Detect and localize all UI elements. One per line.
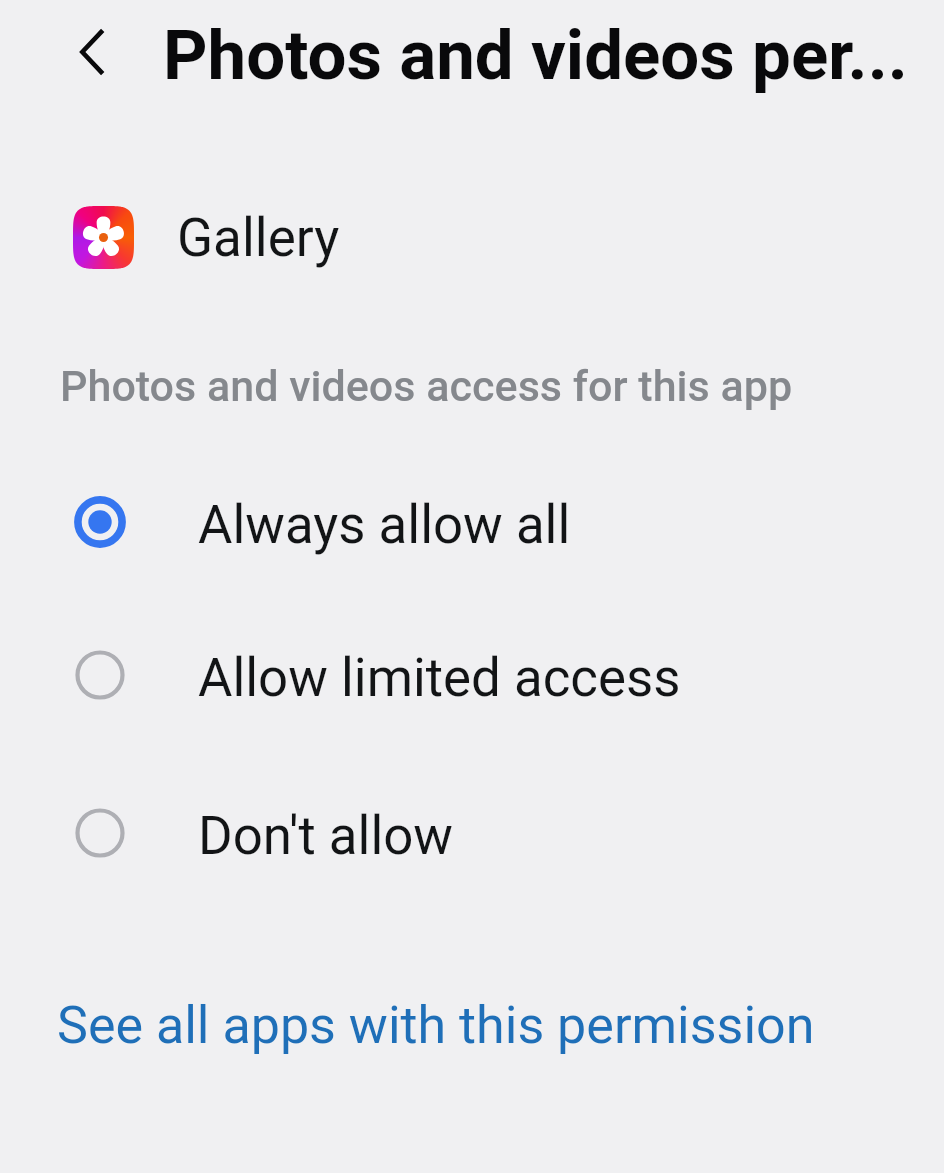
staticText: Allow limited access — [198, 647, 681, 709]
staticText: Don't allow — [198, 805, 454, 867]
button[interactable]: Always allow all — [0, 444, 944, 600]
staticText: See all apps with this permission — [57, 995, 815, 1056]
button[interactable]: Don't allow — [0, 755, 944, 911]
button[interactable]: See all apps with this permission — [57, 995, 815, 1056]
staticText: Photos and videos access for this app — [60, 361, 793, 411]
button[interactable]: Gallery — [0, 180, 944, 294]
staticText: Photos and videos per... — [163, 15, 908, 96]
staticText: Always allow all — [198, 494, 571, 556]
button[interactable]: Navigate up — [60, 20, 124, 84]
button[interactable]: Allow limited access — [0, 597, 944, 753]
staticText: Gallery — [177, 207, 340, 269]
